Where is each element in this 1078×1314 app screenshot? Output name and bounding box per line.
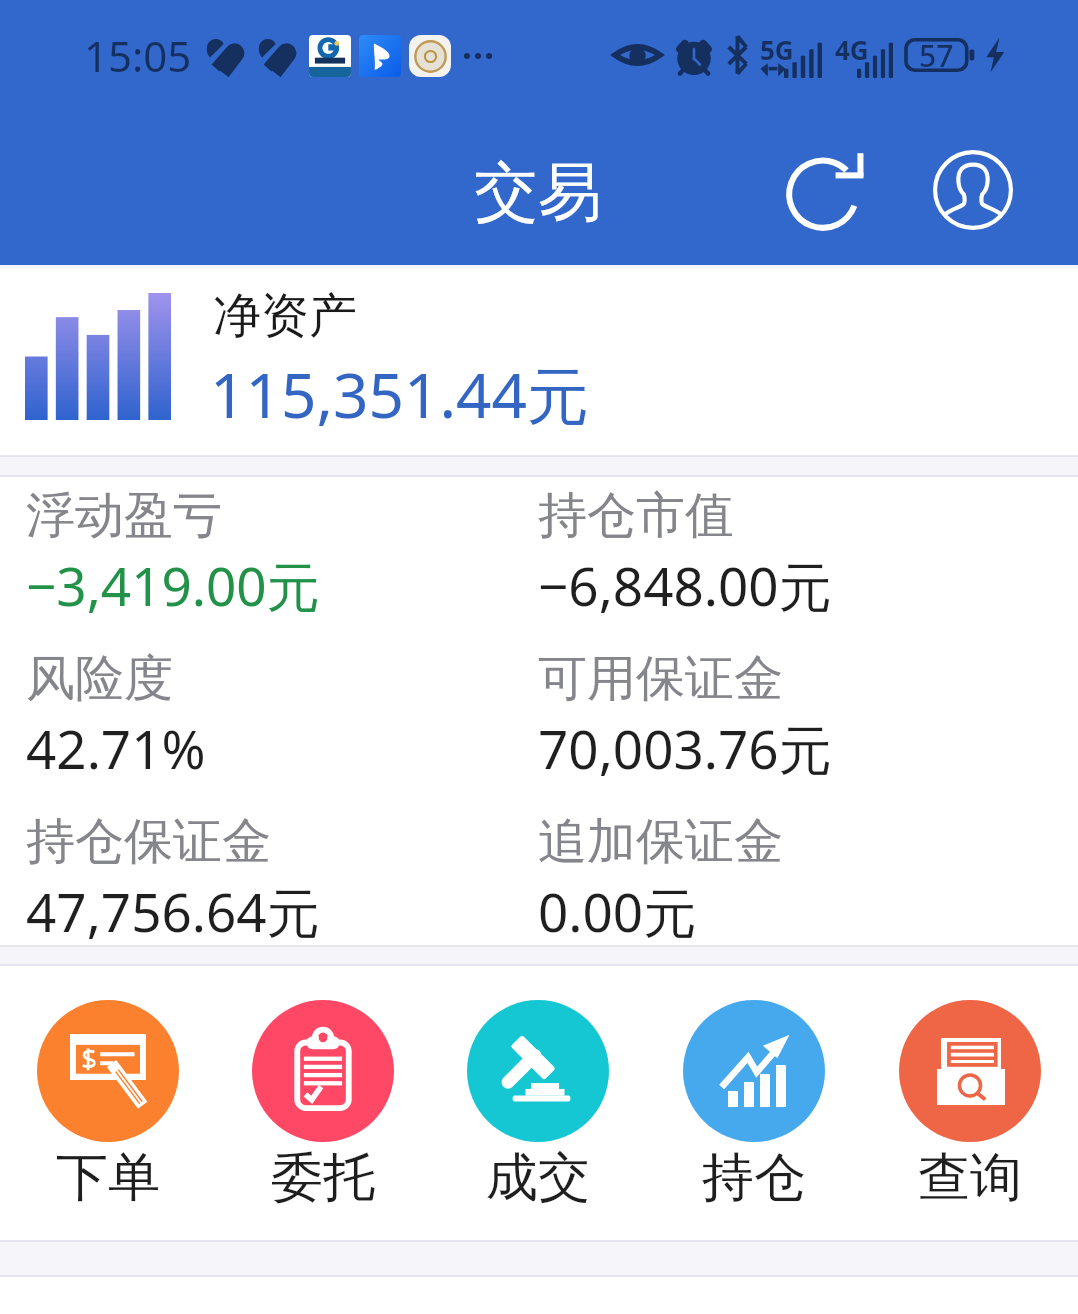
staticText: 42.71% — [26, 712, 206, 784]
button[interactable]: 持仓市值 — [538, 485, 1038, 625]
button[interactable]: 风险度 — [26, 648, 526, 788]
staticText: 交易 — [474, 152, 602, 233]
staticText: 追加保证金 — [538, 811, 783, 873]
staticText: 浮动盈亏 — [26, 485, 222, 547]
staticText: 持仓保证金 — [26, 811, 271, 873]
staticText: 57 — [919, 35, 954, 75]
staticText: −3,419.00元 — [26, 549, 320, 621]
staticText: 持仓 — [702, 1145, 806, 1211]
button[interactable]: 持仓保证金 — [26, 811, 526, 951]
staticText: 下单 — [56, 1145, 160, 1211]
staticText: 可用保证金 — [538, 648, 783, 710]
button[interactable]: 下单 — [0, 966, 215, 1240]
staticText: 0.00元 — [538, 875, 697, 947]
button[interactable]: 可用保证金 — [538, 648, 1038, 788]
button[interactable]: 追加保证金 — [538, 811, 1038, 951]
button[interactable]: 净资产 — [0, 268, 1078, 455]
staticText: 4G — [835, 32, 869, 67]
staticText: 委托 — [271, 1145, 375, 1211]
staticText: 115,351.44元 — [210, 352, 589, 437]
staticText: 15:05 — [84, 27, 192, 84]
staticText: 查询 — [918, 1145, 1022, 1211]
staticText: 成交 — [486, 1145, 590, 1211]
button[interactable]: 持仓 — [646, 966, 862, 1240]
staticText: 净资产 — [213, 286, 357, 346]
button[interactable]: 浮动盈亏 — [26, 485, 526, 625]
staticText: −6,848.00元 — [538, 549, 832, 621]
button[interactable]: 成交 — [430, 966, 646, 1240]
staticText: 风险度 — [26, 648, 173, 710]
staticText: 47,756.64元 — [26, 875, 320, 947]
button[interactable]: Refresh — [775, 138, 879, 242]
button[interactable]: 委托 — [215, 966, 430, 1240]
button[interactable]: Account — [921, 138, 1025, 242]
staticText: 5G — [760, 32, 794, 67]
staticText: 70,003.76元 — [538, 712, 832, 784]
staticText: 持仓市值 — [538, 485, 734, 547]
button[interactable]: 查询 — [862, 966, 1078, 1240]
